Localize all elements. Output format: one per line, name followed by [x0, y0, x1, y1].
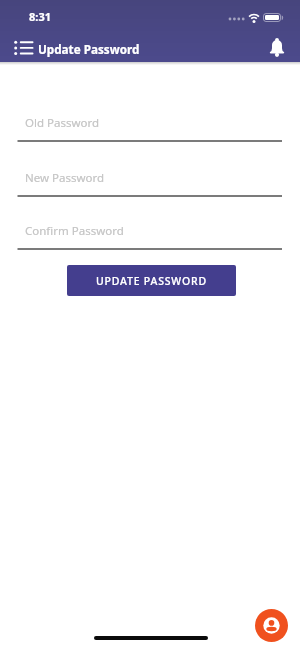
staticText: 8:31 [29, 9, 51, 24]
button[interactable]: UPDATE PASSWORD [67, 265, 236, 296]
staticText: Update Password [38, 41, 140, 57]
button[interactable]: Confirm Password [0, 215, 300, 251]
button[interactable] [263, 33, 291, 61]
button[interactable]: New Password [0, 162, 300, 198]
staticText: Confirm Password [25, 223, 124, 239]
staticText: Old Password [25, 115, 100, 131]
button[interactable] [8, 34, 36, 62]
staticText: New Password [25, 170, 105, 186]
button[interactable]: Old Password [0, 107, 300, 143]
staticText: UPDATE PASSWORD [96, 274, 207, 288]
button[interactable] [255, 609, 288, 642]
